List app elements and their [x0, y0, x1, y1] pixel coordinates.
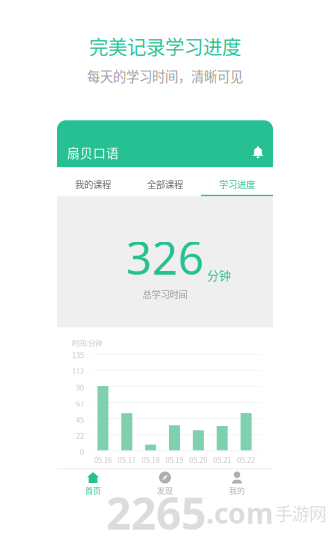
staticText: 时间:分钟 [72, 337, 102, 348]
staticText: 分钟 [207, 267, 231, 284]
staticText: 90 [76, 382, 84, 393]
staticText: 05.22 [237, 454, 255, 465]
staticText: .com [206, 494, 273, 531]
button[interactable]: Notifications [249, 143, 267, 161]
staticText: 05.19 [165, 454, 183, 465]
staticText: 0 [80, 446, 84, 457]
button[interactable]: 首页 [57, 469, 129, 498]
staticText: 05.17 [118, 454, 136, 465]
staticText: 学习进度 [219, 177, 255, 191]
button[interactable]: 我的 [201, 469, 273, 498]
staticText: 05.16 [94, 454, 112, 465]
staticText: 05.20 [189, 454, 207, 465]
staticText: 45 [76, 414, 84, 425]
staticText: 扇贝口语 [67, 143, 119, 161]
staticText: 我的课程 [75, 177, 111, 191]
staticText: 每天的学习时间，清晰可见 [87, 66, 243, 85]
staticText: 我的 [229, 484, 245, 496]
staticText: 67 [76, 398, 84, 409]
staticText: 完美记录学习进度 [89, 32, 241, 60]
button[interactable]: 全部课程 [129, 167, 201, 196]
staticText: 发现 [157, 484, 173, 496]
staticText: 05.18 [142, 454, 160, 465]
button[interactable]: 发现 [129, 469, 201, 498]
button[interactable]: 学习进度 [201, 167, 273, 196]
staticText: 112 [72, 366, 84, 376]
staticText: 2265 [106, 484, 206, 542]
staticText: 手游网 [275, 500, 326, 525]
staticText: 05.21 [213, 454, 231, 465]
staticText: 326 [126, 227, 204, 287]
staticText: 全部课程 [147, 177, 183, 191]
button[interactable]: 我的课程 [57, 167, 129, 196]
staticText: 22 [76, 430, 84, 441]
staticText: 135 [72, 350, 84, 360]
staticText: 总学习时间 [142, 287, 187, 301]
staticText: 首页 [85, 484, 101, 496]
